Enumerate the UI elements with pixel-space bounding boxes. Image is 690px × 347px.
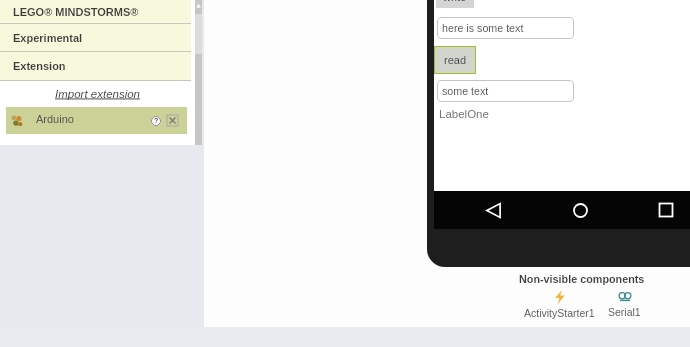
staticText: Arduino	[36, 113, 74, 125]
staticText: Serial1	[608, 306, 641, 318]
button[interactable]: read	[434, 46, 476, 74]
staticText: LEGO® MINDSTORMS®	[13, 6, 139, 18]
staticText: Experimental	[13, 32, 83, 44]
button[interactable]: Home	[566, 196, 594, 224]
staticText: Extension	[13, 60, 66, 72]
button[interactable]: ActivityStarter1	[524, 290, 595, 319]
button[interactable]: Back	[479, 196, 507, 224]
button[interactable]: Help	[151, 116, 161, 126]
button[interactable]: Experimental	[0, 24, 191, 51]
button[interactable]: LEGO® MINDSTORMS®	[0, 0, 191, 23]
button[interactable]: Arduino	[6, 107, 187, 134]
staticText: ActivityStarter1	[524, 307, 595, 319]
button[interactable]: write	[436, 0, 474, 8]
button[interactable]: Import extension	[55, 88, 141, 101]
button[interactable]: Extension	[0, 52, 191, 80]
staticText: some text	[442, 85, 489, 97]
button[interactable]: Serial1	[608, 290, 641, 318]
staticText: LabelOne	[439, 108, 489, 121]
button[interactable]: Remove	[167, 115, 178, 126]
staticText: write	[443, 0, 467, 3]
staticText: read	[444, 54, 467, 66]
button[interactable]: Recent apps	[652, 196, 680, 224]
button[interactable]: here is some text	[437, 17, 574, 39]
staticText: Non-visible components	[519, 273, 645, 285]
staticText: ?	[154, 117, 159, 125]
staticText: here is some text	[442, 22, 524, 34]
button[interactable]: some text	[437, 80, 574, 102]
